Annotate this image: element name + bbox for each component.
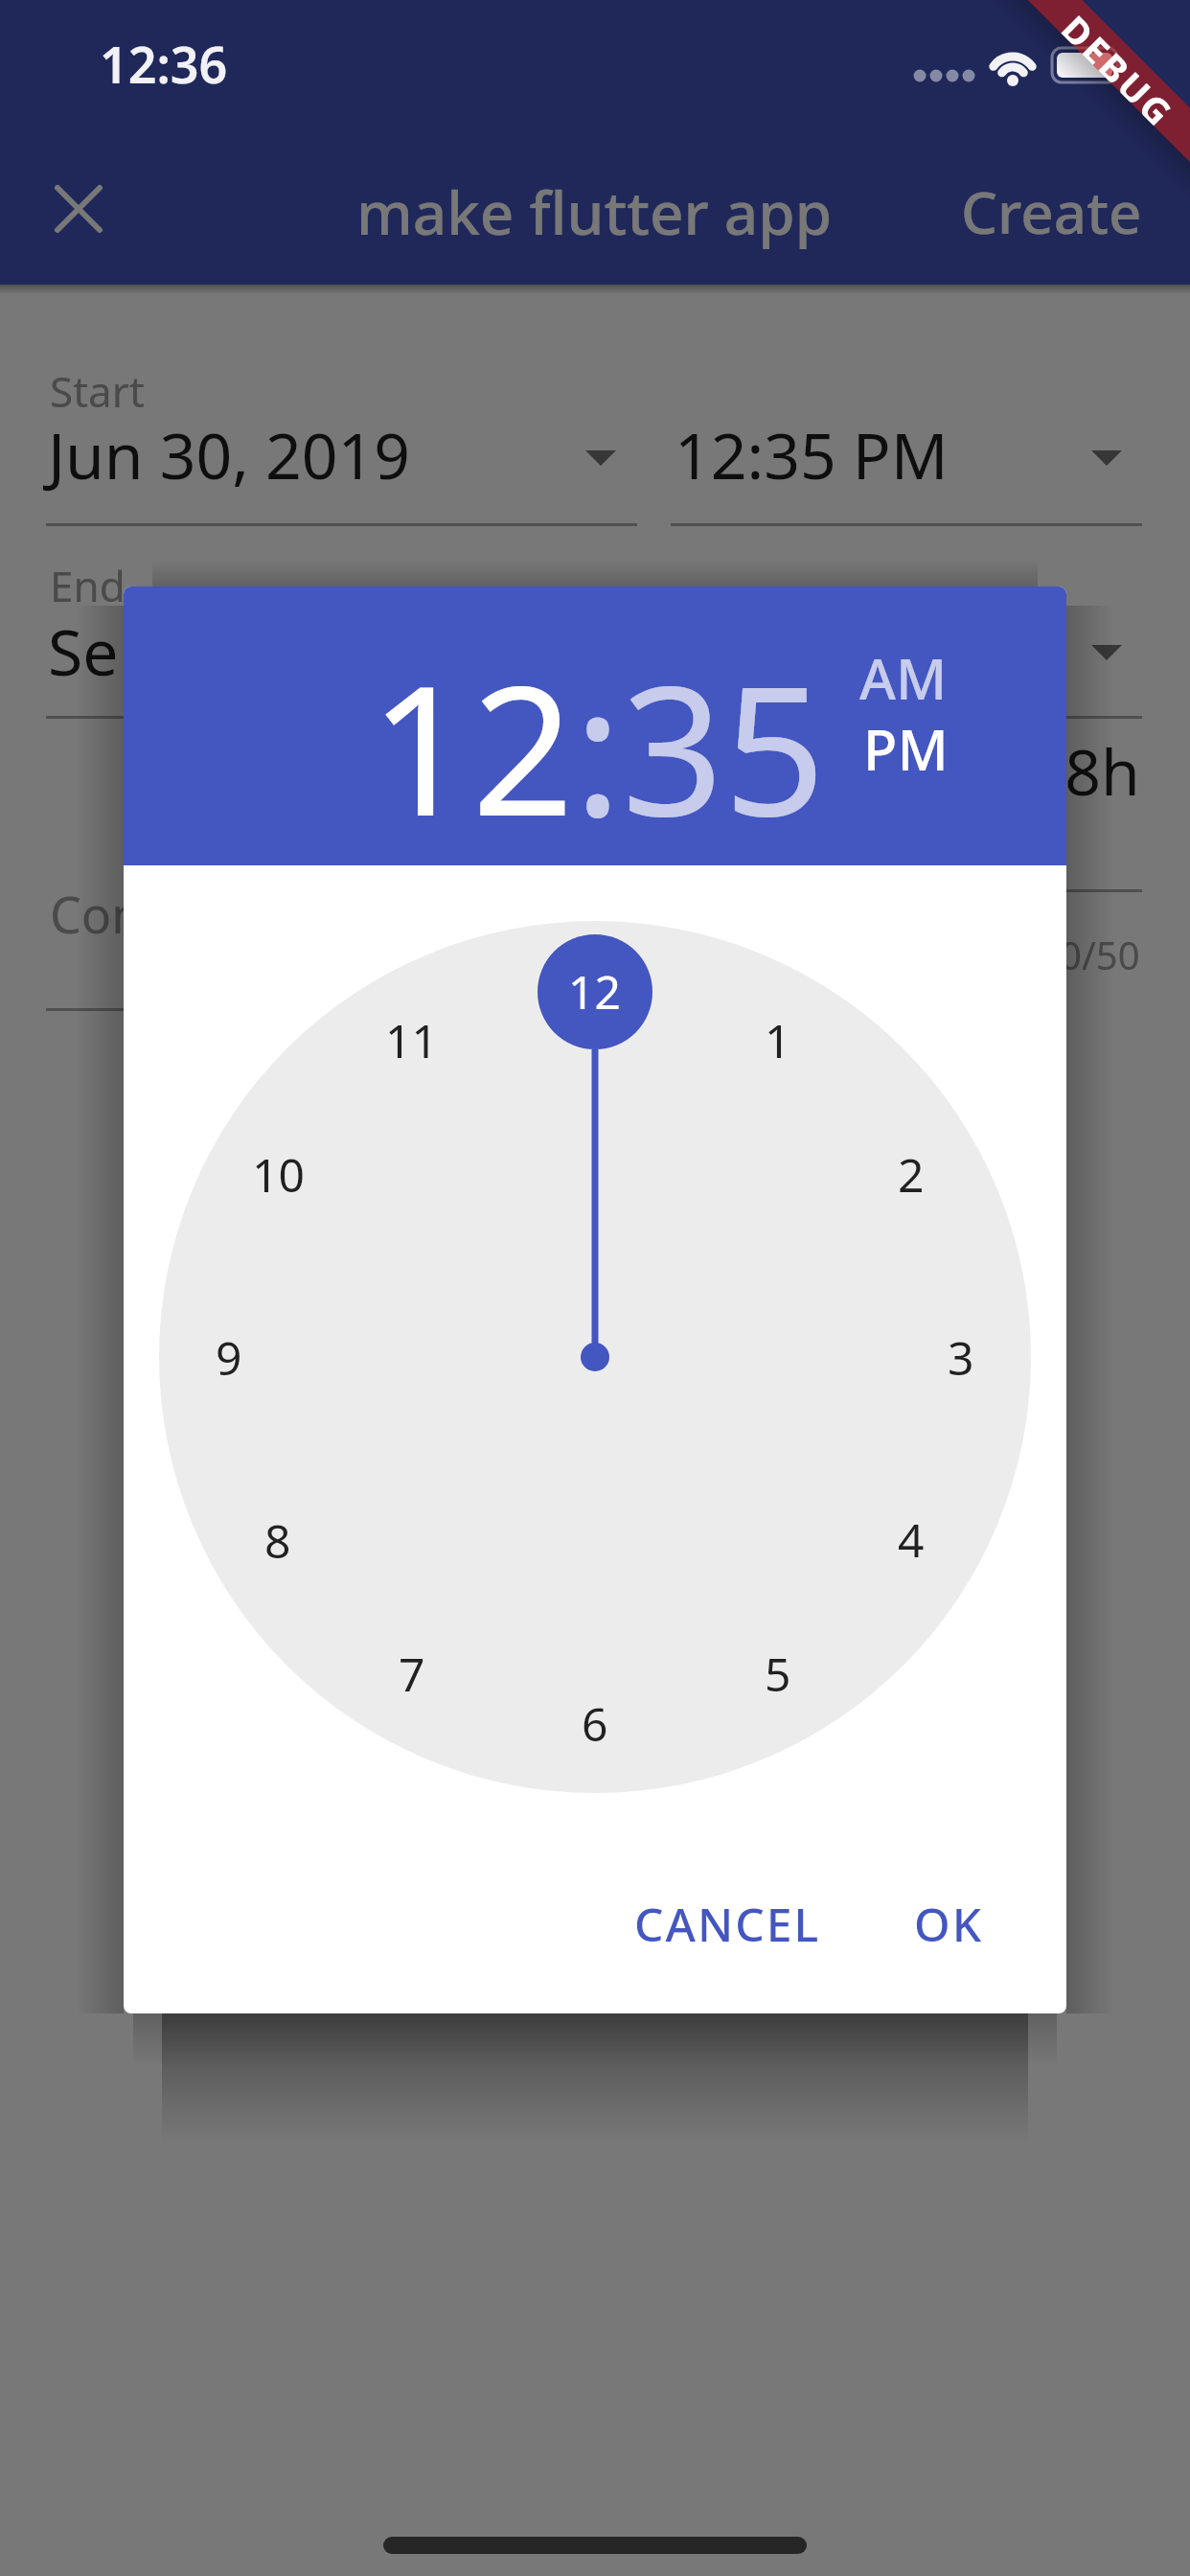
button[interactable]: AM — [827, 640, 980, 701]
button[interactable]: 8 — [220, 1506, 335, 1574]
button[interactable]: 1 — [721, 1006, 835, 1073]
staticText: Create — [961, 172, 1142, 251]
button[interactable]: 12:35 PM — [675, 411, 1058, 497]
staticText: 9 — [216, 1326, 242, 1389]
button[interactable]: 11 — [354, 1006, 469, 1073]
staticText: 12:36 — [100, 30, 228, 97]
staticText: 10 — [252, 1143, 305, 1206]
staticText: 12:35 PM — [675, 411, 949, 497]
staticText: 12:35 PM — [675, 608, 949, 694]
button[interactable]: CANCEL — [603, 1861, 852, 1986]
staticText: 11 — [385, 1009, 438, 1071]
staticText: Sep 14, 2019 — [48, 608, 424, 694]
staticText: End — [50, 557, 126, 614]
staticText: 12 — [568, 960, 621, 1023]
button[interactable]: 9 — [172, 1323, 286, 1391]
staticText: 4 — [898, 1508, 925, 1571]
button[interactable]: 10 — [220, 1140, 335, 1207]
button[interactable]: 7 — [355, 1640, 469, 1707]
button[interactable]: 2 — [854, 1140, 969, 1207]
staticText: 2 — [898, 1143, 925, 1206]
staticText: CANCEL — [634, 1893, 821, 1955]
button[interactable]: 12 — [537, 957, 652, 1024]
staticText: 12 — [370, 625, 574, 845]
button[interactable]: 3 — [904, 1323, 1018, 1391]
staticText: 8 — [264, 1509, 291, 1572]
staticText: Jun 30, 2019 — [48, 411, 411, 497]
staticText: 5 — [765, 1643, 791, 1705]
staticText: 1508h — [956, 727, 1140, 814]
staticText: PM — [863, 711, 949, 772]
staticText: OK — [914, 1893, 983, 1955]
staticText: 3 — [948, 1326, 974, 1389]
button[interactable]: 6 — [538, 1690, 652, 1757]
staticText: AM — [859, 640, 948, 701]
button[interactable]: 4 — [854, 1506, 969, 1573]
button[interactable]: Create — [916, 159, 1142, 264]
button[interactable]: OK — [872, 1861, 1025, 1986]
button[interactable]: PM — [829, 711, 982, 772]
staticText: make flutter app — [356, 172, 833, 252]
staticText: Start — [50, 362, 145, 420]
staticText: 6 — [582, 1692, 608, 1755]
staticText: DEBUG — [1059, 4, 1185, 130]
staticText: 0/50 — [1060, 929, 1140, 980]
staticText: :35 — [574, 625, 826, 845]
staticText: 7 — [399, 1643, 425, 1705]
button[interactable]: Jun 30, 2019 — [48, 411, 584, 497]
button[interactable]: 5 — [721, 1640, 835, 1707]
button[interactable]: Sep 14, 2019 — [48, 608, 584, 694]
staticText: 1 — [765, 1009, 791, 1071]
button[interactable] — [56, 186, 102, 232]
staticText: Comments — [50, 880, 306, 947]
